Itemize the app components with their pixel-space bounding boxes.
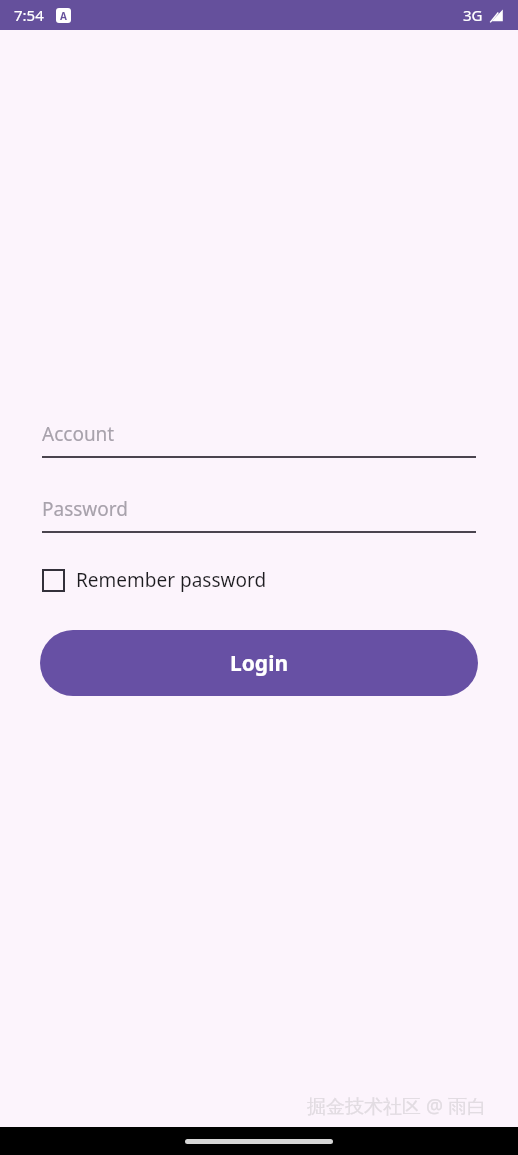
button[interactable]: Account — [42, 412, 476, 458]
other: Signal strength — [489, 8, 504, 23]
staticText: Password — [42, 496, 128, 522]
staticText: Login — [230, 649, 289, 678]
button[interactable]: Remember password — [40, 561, 269, 599]
staticText: Account — [42, 421, 115, 447]
staticText: 掘金技术社区 @ 雨白 — [307, 1093, 486, 1119]
staticText: Remember password — [76, 567, 267, 593]
button[interactable]: Password — [42, 487, 476, 533]
button[interactable]: Login — [40, 630, 478, 696]
staticText: 7:54 — [14, 5, 44, 25]
staticText: A — [60, 9, 67, 23]
staticText: 3G — [463, 5, 483, 25]
